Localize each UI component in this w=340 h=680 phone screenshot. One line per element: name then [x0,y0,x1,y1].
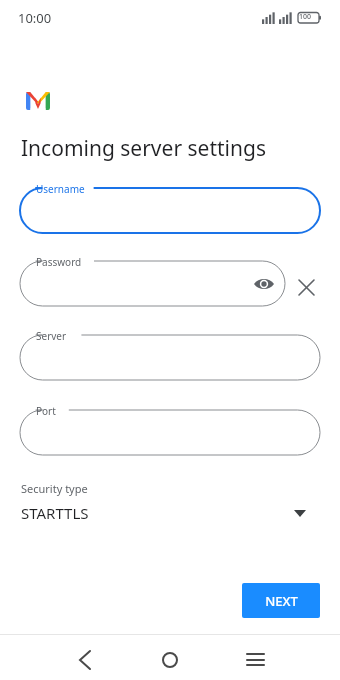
staticText: STARTTLS [21,503,89,523]
staticText: Security type [21,481,88,496]
button[interactable] [20,188,320,233]
staticText: 10:00 [18,9,52,27]
button[interactable]: Show password [250,270,278,298]
button[interactable]: Security type [0,478,340,530]
staticText: 100 [299,12,312,22]
staticText: Server [36,329,67,343]
button[interactable] [20,335,320,380]
staticText: Incoming server settings [21,134,266,163]
staticText: Password [36,255,82,269]
staticText: Username [36,182,85,196]
button[interactable]: NEXT [242,583,320,618]
button[interactable]: Back [66,641,104,679]
button[interactable]: Recent apps [236,641,274,679]
staticText: Port [36,404,56,418]
button[interactable] [20,261,285,306]
button[interactable]: Clear [292,273,320,301]
staticText: NEXT [265,592,298,610]
button[interactable]: Home [151,641,189,679]
button[interactable] [20,410,320,455]
